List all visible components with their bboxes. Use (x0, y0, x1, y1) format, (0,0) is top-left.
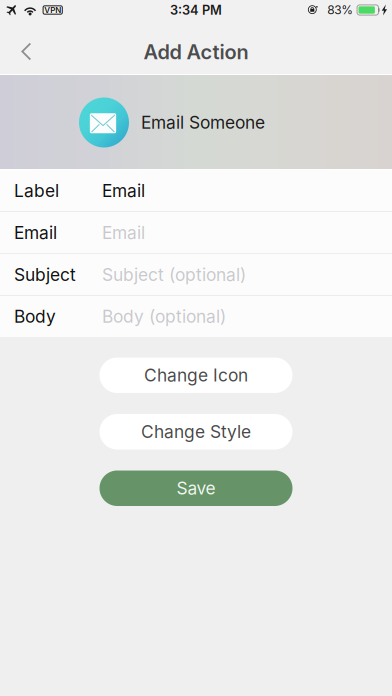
staticText: Add Action (143, 40, 248, 64)
button[interactable]: Body (0, 296, 392, 337)
staticText: Change Icon (144, 365, 248, 386)
staticText: VPN (44, 5, 61, 15)
staticText: Email (102, 222, 145, 243)
staticText: 83% (327, 3, 353, 17)
button[interactable]: Label (0, 170, 392, 212)
staticText: Save (176, 478, 215, 499)
staticText: Subject (14, 264, 76, 285)
staticText: Email Someone (141, 112, 265, 133)
staticText: Body (optional) (102, 306, 226, 327)
button[interactable]: Subject (0, 254, 392, 296)
staticText: 3:34 PM (170, 2, 222, 18)
staticText: Email (102, 180, 145, 201)
staticText: Body (14, 306, 56, 327)
button[interactable]: Email (0, 212, 392, 254)
staticText: Subject (optional) (102, 264, 246, 285)
button[interactable]: Change Style (99, 414, 292, 449)
staticText: Change Style (141, 421, 251, 442)
button[interactable]: Change Icon (99, 357, 292, 393)
staticText: Email (14, 222, 57, 243)
button[interactable]: Back (5, 30, 47, 72)
button[interactable]: Save (99, 470, 292, 506)
staticText: Label (14, 180, 59, 201)
